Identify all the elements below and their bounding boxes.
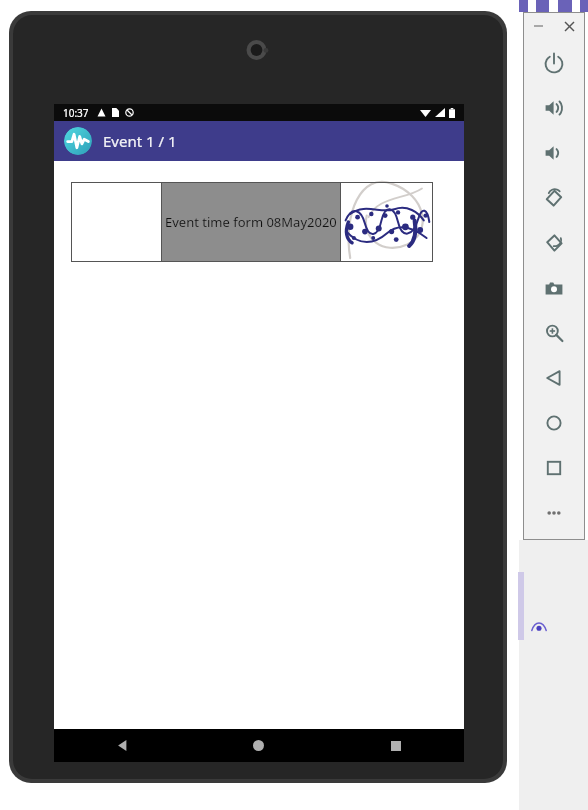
button[interactable]: Rotate right xyxy=(523,220,585,265)
button[interactable]: Overview xyxy=(523,445,585,490)
button[interactable]: Minimize xyxy=(523,12,554,40)
button[interactable]: Home xyxy=(190,729,327,762)
button[interactable]: Home xyxy=(523,400,585,445)
staticText: Event time form 08May2020 xyxy=(165,213,337,231)
button[interactable]: Recents xyxy=(327,729,464,762)
button[interactable]: Rotate left xyxy=(523,175,585,220)
button[interactable]: Back xyxy=(523,355,585,400)
button[interactable]: Power xyxy=(523,40,585,85)
button[interactable]: Zoom xyxy=(523,310,585,355)
button[interactable]: Close xyxy=(554,12,585,40)
staticText: Event 1 / 1 xyxy=(103,131,177,151)
staticText: 10:37 xyxy=(63,106,89,120)
button[interactable]: App logo xyxy=(64,127,92,155)
button[interactable]: Event time form 08May2020 xyxy=(71,182,433,262)
button[interactable]: App logo xyxy=(54,121,464,161)
button[interactable]: Volume up xyxy=(523,85,585,130)
button[interactable]: Volume down xyxy=(523,130,585,175)
button[interactable]: Back xyxy=(54,729,190,762)
button[interactable]: Screenshot xyxy=(523,265,585,310)
button[interactable]: More xyxy=(523,490,585,535)
